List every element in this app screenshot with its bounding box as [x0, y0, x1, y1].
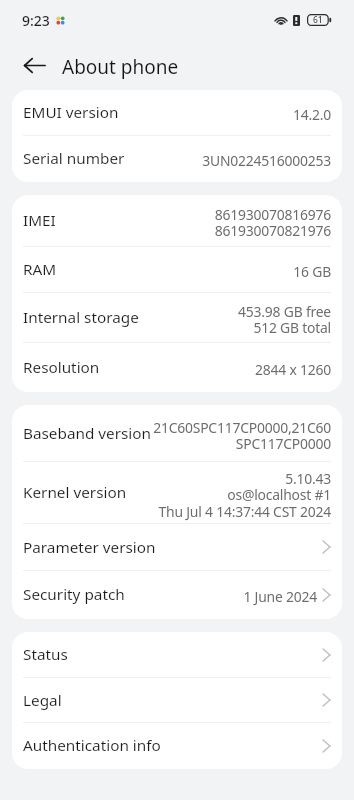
button[interactable]: Kernel version [12, 462, 342, 524]
staticText: Security patch [23, 584, 125, 605]
button[interactable]: Back [15, 46, 53, 84]
staticText: Serial number [23, 148, 125, 169]
staticText: 861930070816976 861930070821976 [214, 205, 331, 240]
staticText: 16 GB [293, 262, 331, 281]
button[interactable]: Authentication info [12, 723, 342, 769]
staticText: 453.98 GB free 512 GB total [238, 302, 331, 337]
staticText: IMEI [23, 210, 56, 231]
staticText: 3UN0224516000253 [202, 151, 331, 170]
staticText: Status [23, 644, 68, 665]
staticText: 5.10.43 os@localhost #1 Thu Jul 4 14:37:… [158, 469, 331, 521]
staticText: Baseband version [23, 423, 152, 444]
button[interactable]: RAM [12, 247, 342, 293]
button[interactable]: Baseband version [12, 405, 342, 462]
button[interactable]: Resolution [12, 343, 342, 392]
staticText: EMUI version [23, 102, 119, 123]
staticText: Kernel version [23, 482, 127, 503]
button[interactable]: EMUI version [12, 90, 342, 136]
button[interactable]: Legal [12, 678, 342, 723]
staticText: 9:23 [22, 11, 50, 30]
button[interactable]: Parameter version [12, 524, 342, 571]
staticText: 2844 x 1260 [255, 360, 331, 379]
staticText: Resolution [23, 357, 100, 378]
staticText: 21C60SPC117CP0000,21C60 SPC117CP0000 [153, 418, 331, 453]
staticText: Internal storage [23, 307, 139, 328]
staticText: Parameter version [23, 537, 156, 558]
button[interactable]: Internal storage [12, 293, 342, 343]
button[interactable]: Security patch [12, 571, 342, 619]
button[interactable]: Status [12, 632, 342, 678]
staticText: 1 June 2024 [243, 587, 317, 606]
staticText: Authentication info [23, 735, 161, 756]
staticText: 61 [313, 14, 323, 26]
staticText: RAM [23, 259, 57, 280]
button[interactable]: IMEI [12, 195, 342, 247]
button[interactable]: Serial number [12, 136, 342, 182]
staticText: Legal [23, 690, 62, 711]
staticText: About phone [62, 54, 179, 80]
staticText: 14.2.0 [292, 105, 331, 124]
